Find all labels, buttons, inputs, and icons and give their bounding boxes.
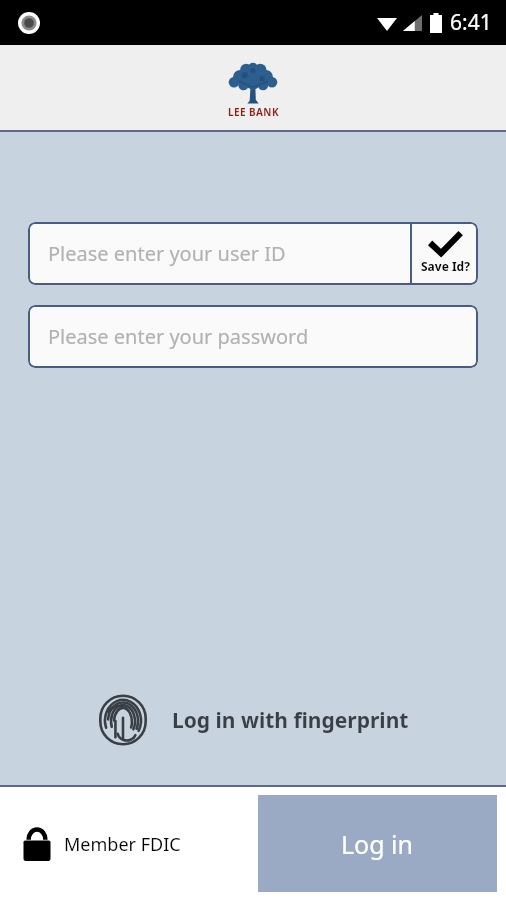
button[interactable]: Secure bbox=[22, 826, 181, 862]
staticText: 6:41 bbox=[450, 8, 492, 37]
button[interactable]: Please enter your user ID bbox=[28, 222, 410, 285]
other: Log in with fingerprint bbox=[96, 693, 150, 747]
staticText: Log in bbox=[341, 827, 414, 861]
other: Save Id bbox=[430, 233, 460, 257]
button[interactable]: Log in with fingerprint bbox=[96, 693, 409, 747]
staticText: Please enter your password bbox=[48, 323, 309, 350]
staticText: LEE BANK bbox=[228, 105, 279, 119]
button[interactable]: Please enter your password bbox=[28, 305, 478, 368]
staticText: Member FDIC bbox=[64, 832, 181, 857]
button[interactable]: Log in bbox=[258, 795, 497, 892]
staticText: Log in with fingerprint bbox=[172, 706, 409, 735]
staticText: Save Id? bbox=[421, 258, 470, 274]
button[interactable]: Save Id bbox=[412, 222, 478, 285]
staticText: Please enter your user ID bbox=[48, 240, 286, 267]
other: Secure bbox=[22, 826, 52, 862]
